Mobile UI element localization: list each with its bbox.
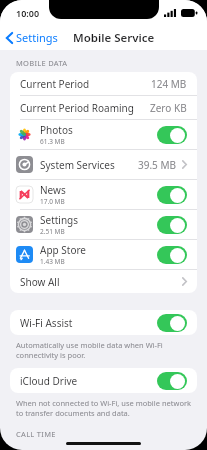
staticText: Current Period [20, 77, 90, 91]
button[interactable]: Settings [10, 210, 197, 239]
staticText: System Services [40, 158, 115, 172]
button[interactable]: Wi-Fi Assist [10, 310, 197, 335]
button[interactable]: Toggle on [157, 372, 187, 390]
staticText: Mobile Service [73, 30, 155, 46]
staticText: Wi-Fi Assist [20, 316, 73, 330]
staticText: When not connected to Wi-Fi, use mobile … [16, 398, 192, 418]
staticText: MOBILE DATA [16, 58, 68, 68]
button[interactable]: Settings [0, 27, 64, 48]
button[interactable]: Toggle on [157, 314, 187, 332]
button[interactable]: Show All [10, 270, 197, 293]
staticText: Show All [20, 275, 60, 289]
button[interactable]: News [10, 180, 197, 209]
staticText: Zero KB [150, 101, 187, 115]
button[interactable]: Photos [10, 120, 197, 149]
staticText: 2.51 MB [40, 227, 65, 236]
staticText: Automatically use mobile data when Wi-Fi… [16, 340, 163, 360]
staticText: 17.0 MB [40, 197, 65, 206]
button[interactable]: System Services [10, 150, 197, 179]
button[interactable]: Toggle on [157, 216, 187, 234]
staticText: App Store [40, 243, 87, 257]
staticText: CALL TIME [16, 429, 56, 439]
button[interactable]: Toggle on [157, 186, 187, 204]
button[interactable]: App Store [10, 240, 197, 269]
staticText: Settings [16, 30, 58, 45]
staticText: 61.3 MB [40, 137, 65, 146]
staticText: 39.5 MB [138, 158, 177, 172]
staticText: Settings [40, 213, 79, 227]
button[interactable]: Current Period [10, 72, 197, 95]
staticText: Current Period Roaming [20, 101, 134, 115]
staticText: 1.43 MB [40, 257, 65, 266]
button[interactable]: Current Period Roaming [10, 96, 197, 119]
button[interactable]: iCloud Drive [10, 368, 197, 393]
staticText: News [40, 183, 66, 197]
staticText: iCloud Drive [20, 374, 78, 388]
staticText: 124 MB [151, 77, 187, 91]
staticText: 10:00 [16, 7, 40, 19]
button[interactable]: Toggle on [157, 126, 187, 144]
staticText: Photos [40, 123, 73, 137]
button[interactable]: Toggle on [157, 246, 187, 264]
